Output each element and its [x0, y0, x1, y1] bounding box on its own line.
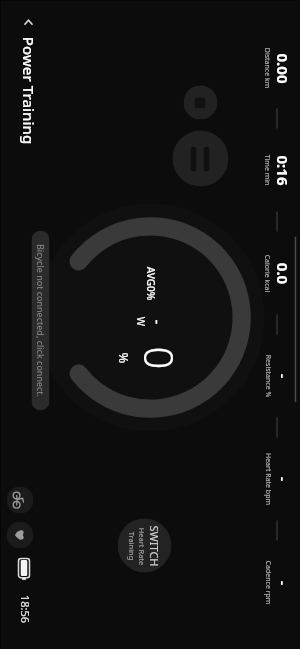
staticText: 0:16: [272, 155, 292, 185]
staticText: SWITCH: [146, 525, 161, 566]
staticText: -: [273, 580, 291, 585]
staticText: -: [273, 476, 291, 481]
button[interactable]: Bicycle not connected, click connect.: [31, 230, 49, 410]
staticText: 0.0: [272, 262, 292, 284]
other: Back: [22, 16, 34, 28]
staticText: Training: [126, 531, 136, 560]
button[interactable]: 0.00: [261, 26, 292, 108]
button[interactable]: Heart rate sensor: [6, 521, 33, 548]
button[interactable]: -: [262, 540, 291, 623]
staticText: W: [133, 316, 147, 326]
staticText: -: [147, 319, 167, 324]
staticText: Heart Rate: [136, 527, 146, 565]
button[interactable]: -: [262, 437, 291, 520]
button[interactable]: Back: [14, 12, 42, 148]
staticText: 0.00: [272, 53, 292, 83]
staticText: %: [114, 352, 132, 363]
button[interactable]: SWITCH: [117, 518, 171, 572]
staticText: Resistance %: [262, 354, 272, 397]
staticText: Time min: [261, 154, 271, 185]
staticText: Bicycle not connected, click connect.: [34, 243, 46, 397]
button[interactable]: 0:16: [261, 128, 292, 211]
staticText: -: [273, 373, 291, 378]
button[interactable]: 0.0: [261, 231, 292, 314]
staticText: Heart Rate bpm: [262, 452, 272, 505]
button[interactable]: Bicycle sensor: [6, 486, 33, 513]
staticText: AVG0%: [143, 266, 157, 300]
staticText: Calorie kcal: [261, 254, 271, 292]
staticText: 18:56: [17, 594, 32, 623]
staticText: Cadence rpm: [262, 560, 272, 604]
button[interactable]: -: [262, 334, 291, 417]
button[interactable]: Pause: [172, 130, 228, 186]
staticText: Distance km: [261, 47, 271, 88]
staticText: Power Training: [18, 36, 38, 144]
staticText: 0: [132, 346, 186, 369]
button[interactable]: Stop: [183, 85, 217, 119]
